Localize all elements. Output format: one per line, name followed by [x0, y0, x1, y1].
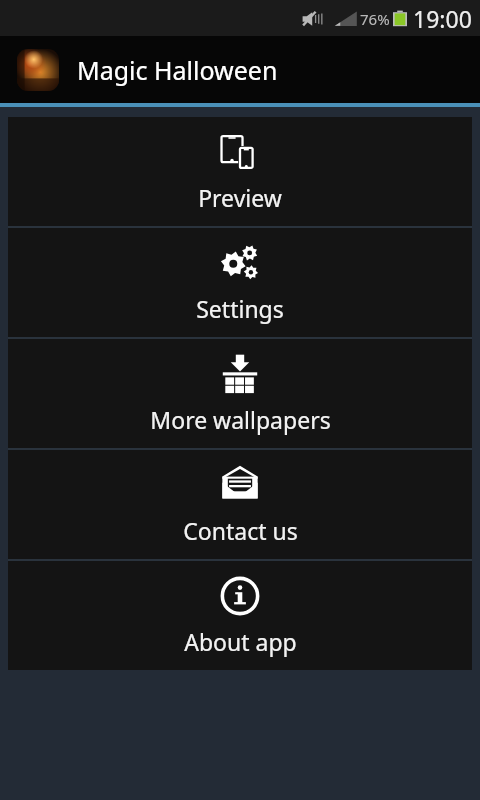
button[interactable]: Settings: [8, 228, 472, 337]
other: About app: [219, 575, 261, 617]
staticText: About app: [184, 626, 297, 657]
staticText: Magic Halloween: [77, 53, 278, 87]
staticText: 76%: [360, 9, 390, 29]
staticText: 19:00: [413, 3, 472, 34]
button[interactable]: Preview: [8, 117, 472, 226]
staticText: Settings: [196, 293, 284, 324]
button[interactable]: More wallpapers: [8, 339, 472, 448]
staticText: Preview: [198, 182, 282, 213]
other: Contact us: [219, 464, 261, 506]
other: Preview: [219, 131, 261, 173]
other: Settings: [219, 242, 261, 284]
staticText: Contact us: [183, 515, 298, 546]
staticText: More wallpapers: [150, 404, 331, 435]
other: More wallpapers: [219, 353, 261, 395]
button[interactable]: About app: [8, 561, 472, 670]
button[interactable]: Contact us: [8, 450, 472, 559]
